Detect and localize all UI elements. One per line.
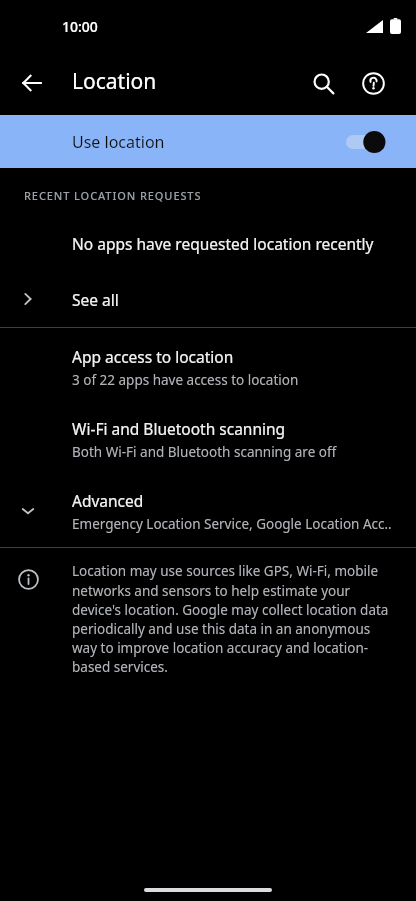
staticText: See all (72, 289, 119, 310)
button[interactable]: Help (349, 59, 397, 107)
button[interactable]: Back (8, 59, 56, 107)
staticText: App access to location (72, 346, 234, 367)
staticText: Use location (72, 131, 165, 153)
staticText: RECENT LOCATION REQUESTS (24, 188, 202, 203)
button[interactable]: See all (0, 279, 416, 319)
staticText: Advanced (72, 490, 144, 511)
staticText: 10:00 (62, 17, 98, 36)
staticText: Emergency Location Service, Google Locat… (72, 515, 392, 533)
staticText: Both Wi-Fi and Bluetooth scanning are of… (72, 443, 337, 461)
staticText: Location may use sources like GPS, Wi-Fi… (72, 562, 398, 676)
button[interactable]: Use location (0, 115, 416, 168)
button[interactable]: App access to location (0, 342, 416, 392)
staticText: No apps have requested location recently (72, 233, 374, 254)
button[interactable]: Wi-Fi and Bluetooth scanning (0, 414, 416, 464)
staticText: Location (72, 67, 157, 96)
staticText: Wi-Fi and Bluetooth scanning (72, 418, 286, 439)
button[interactable]: Search (299, 59, 347, 107)
button[interactable]: Advanced (0, 486, 416, 536)
staticText: 3 of 22 apps have access to location (72, 371, 299, 389)
